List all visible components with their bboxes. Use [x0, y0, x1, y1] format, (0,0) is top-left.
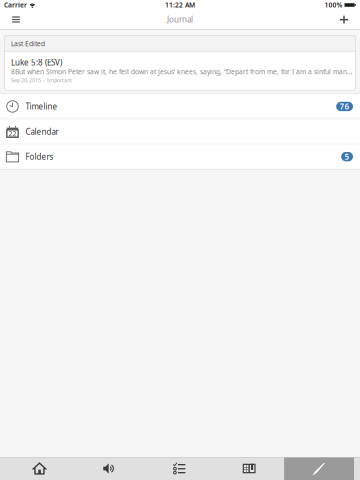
staticText: Calendar [25, 126, 58, 137]
staticText: Last Edited [11, 39, 45, 48]
staticText: Folders [25, 151, 53, 162]
staticText: Carrier [4, 1, 27, 9]
staticText: Sep 20, 2015 - Important [11, 77, 72, 84]
button[interactable]: Plans [144, 457, 214, 480]
staticText: 11:22 AM [165, 1, 195, 9]
staticText: 22 [8, 129, 16, 138]
button[interactable]: 22 [0, 119, 360, 144]
staticText: 76 [340, 101, 350, 112]
staticText: 8But when Simon Peter saw it, he fell do… [11, 67, 351, 76]
staticText: Journal [167, 14, 193, 25]
button[interactable]: Journal [284, 457, 354, 480]
staticText: Timeline [25, 101, 57, 112]
staticText: Luke 5:8 (ESV) [11, 57, 62, 68]
button[interactable]: Folders [0, 144, 360, 169]
button[interactable]: Home [4, 457, 74, 480]
button[interactable]: New entry [328, 10, 360, 29]
button[interactable]: Luke 5:8 (ESV) [4, 52, 355, 90]
staticText: 100% [324, 1, 342, 9]
button[interactable]: Audio [74, 457, 144, 480]
button[interactable]: Library [214, 457, 284, 480]
staticText: 5 [345, 151, 350, 162]
button[interactable]: Menu [0, 10, 32, 29]
button[interactable]: Timeline [0, 94, 360, 119]
